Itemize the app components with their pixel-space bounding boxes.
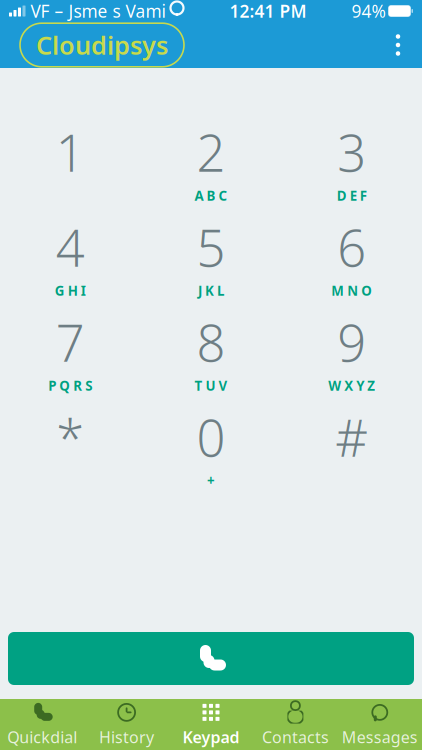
button[interactable]: 8 (141, 318, 281, 385)
staticText: 7 (56, 308, 85, 376)
button[interactable]: * (0, 413, 141, 480)
button[interactable]: 6 (281, 223, 422, 290)
button[interactable]: Contacts (253, 699, 338, 750)
staticText: VF – Jsme s Vami (30, 0, 165, 22)
button[interactable]: Quickdial (0, 699, 84, 750)
button[interactable]: Cloudipsys (20, 23, 184, 67)
staticText: A B C (194, 187, 227, 204)
staticText: 12:41 PM (229, 0, 306, 22)
button[interactable]: Keypad (169, 699, 253, 750)
button[interactable]: 2 (141, 128, 281, 195)
staticText: 3 (337, 118, 366, 186)
staticText: Keypad (182, 726, 239, 748)
staticText: 2 (196, 118, 225, 186)
button[interactable]: Messages (338, 699, 422, 750)
staticText: Quickdial (7, 726, 77, 748)
staticText: 94% (351, 0, 385, 22)
staticText: Contacts (262, 726, 329, 748)
staticText: G H I (55, 282, 86, 299)
staticText: History (99, 726, 154, 748)
staticText: 8 (196, 308, 225, 376)
button[interactable]: 4 (0, 223, 141, 290)
staticText: 6 (337, 213, 366, 281)
button[interactable]: 7 (0, 318, 141, 385)
staticText: W X Y Z (328, 377, 375, 394)
button[interactable]: 3 (281, 128, 422, 195)
staticText: Messages (342, 726, 418, 748)
staticText: 4 (56, 213, 85, 281)
staticText: * (56, 403, 84, 471)
button[interactable]: More options (378, 22, 418, 68)
staticText: 0 (196, 403, 225, 471)
button[interactable]: 9 (281, 318, 422, 385)
staticText: 1 (56, 118, 85, 186)
button[interactable]: 1 (0, 128, 141, 195)
button[interactable]: # (281, 413, 422, 480)
staticText: T U V (194, 377, 227, 394)
staticText: M N O (331, 282, 372, 299)
staticText: Cloudipsys (36, 28, 168, 62)
button[interactable]: 0 (141, 413, 281, 480)
staticText: 5 (196, 213, 225, 281)
staticText: P Q R S (48, 377, 92, 394)
button[interactable]: 5 (141, 223, 281, 290)
staticText: J K L (198, 282, 224, 299)
button[interactable]: History (84, 699, 169, 750)
staticText: + (207, 472, 215, 489)
staticText: D E F (337, 187, 367, 204)
staticText: # (335, 403, 368, 471)
button[interactable]: Call (0, 632, 422, 699)
staticText: 9 (337, 308, 366, 376)
